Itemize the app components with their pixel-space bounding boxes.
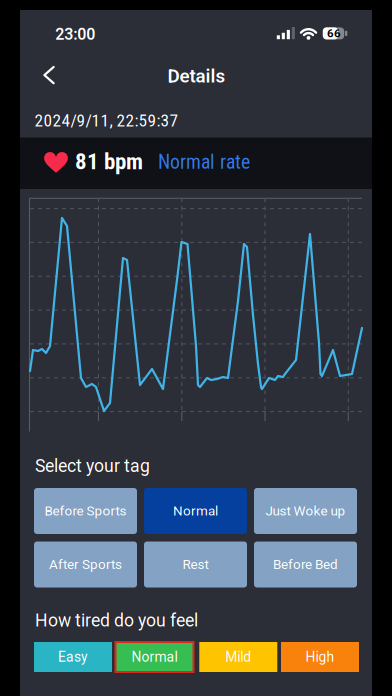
button[interactable]: Mild (199, 642, 277, 672)
button[interactable]: Back (27, 53, 71, 97)
staticText: High (305, 649, 334, 665)
staticText: Normal (131, 649, 177, 665)
staticText: 81 bpm (75, 148, 143, 175)
staticText: Before Bed (273, 557, 338, 572)
staticText: Normal (173, 503, 218, 519)
button[interactable]: Normal (114, 641, 194, 673)
staticText: Before Sports (44, 503, 126, 519)
button[interactable]: Easy (34, 642, 112, 672)
staticText: After Sports (49, 557, 122, 572)
button[interactable]: Before Bed (254, 541, 357, 587)
staticText: Rest (182, 557, 208, 572)
button[interactable]: After Sports (34, 541, 137, 587)
staticText: 23:00 (55, 25, 95, 44)
staticText: 66 (327, 27, 341, 40)
staticText: Normal rate (158, 150, 250, 173)
staticText: Easy (58, 649, 88, 665)
button[interactable]: High (281, 642, 359, 672)
staticText: Just Woke up (265, 503, 345, 519)
staticText: Select your tag (35, 456, 150, 476)
button[interactable]: Before Sports (34, 488, 137, 534)
staticText: Details (167, 65, 225, 87)
button[interactable]: Normal (144, 488, 247, 534)
button[interactable]: Rest (144, 541, 247, 587)
staticText: 2024/9/11, 22:59:37 (34, 110, 178, 131)
staticText: How tired do you feel (35, 610, 198, 631)
button[interactable]: Just Woke up (254, 488, 357, 534)
staticText: Mild (225, 649, 251, 665)
